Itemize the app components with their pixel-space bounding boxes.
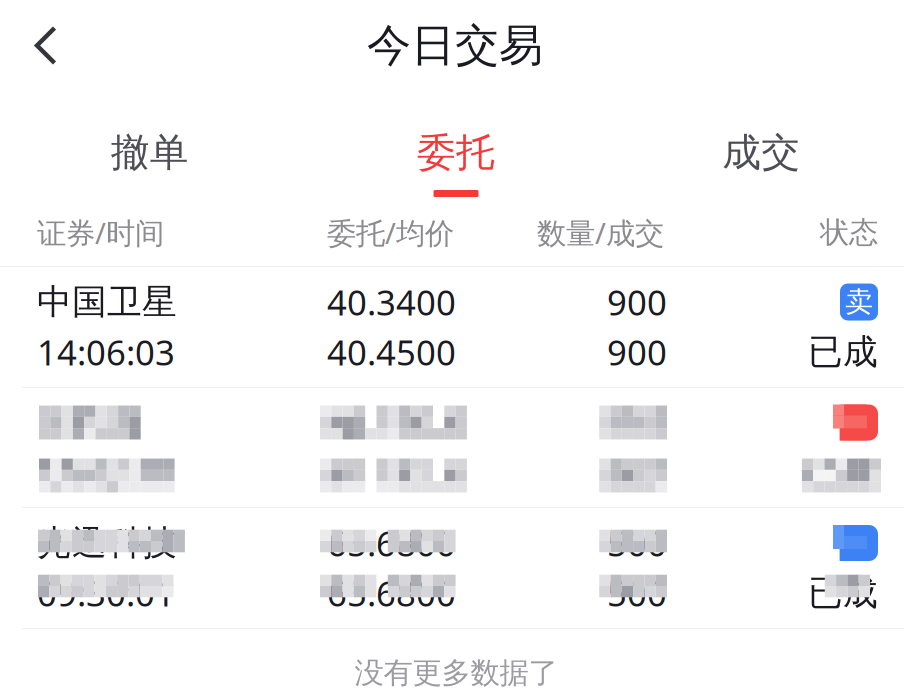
staticText: 40.3400: [327, 279, 456, 325]
staticText: 500: [607, 520, 667, 566]
staticText: 已成: [808, 331, 878, 373]
staticText: 撤单: [111, 129, 189, 176]
staticText: 65.6800: [327, 570, 456, 616]
staticText: 已成: [808, 572, 878, 614]
staticText: 40.4500: [327, 329, 456, 375]
staticText: 委托/均价: [327, 213, 454, 252]
button[interactable]: 中国卫星: [0, 267, 904, 387]
staticText: 成交: [722, 129, 800, 176]
button[interactable]: 返回: [0, 11, 76, 79]
staticText: 证券/时间: [37, 213, 164, 252]
staticText: 500: [607, 570, 667, 616]
button[interactable]: 成交: [603, 91, 904, 205]
staticText: 65.6800: [327, 520, 456, 566]
staticText: 14:06:03: [37, 329, 175, 375]
button[interactable]: 撤单: [0, 91, 301, 205]
button[interactable]: 委托: [301, 91, 603, 205]
staticText: 委托: [417, 129, 495, 176]
staticText: 今日交易: [367, 18, 543, 72]
button[interactable]: 光迅科技: [0, 508, 904, 628]
staticText: 状态: [820, 214, 878, 250]
staticText: 没有更多数据了: [354, 655, 557, 691]
staticText: 光迅科技: [37, 522, 177, 564]
staticText: 数量/成交: [537, 213, 664, 252]
staticText: 中国卫星: [37, 281, 177, 323]
staticText: 09:30:01: [37, 570, 175, 616]
button[interactable]: [0, 388, 904, 507]
staticText: 900: [607, 279, 667, 325]
staticText: 卖: [845, 285, 873, 319]
staticText: 900: [607, 329, 667, 375]
